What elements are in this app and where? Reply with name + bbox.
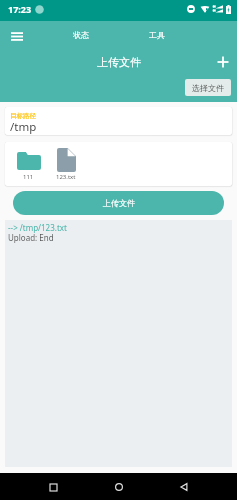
button[interactable]: 状态 xyxy=(43,21,119,48)
button[interactable]: 123.txt xyxy=(47,147,85,181)
staticText: 状态 xyxy=(73,30,89,40)
button[interactable]: Recents xyxy=(42,476,64,498)
button[interactable]: 111 xyxy=(10,147,47,181)
staticText: 17:23 xyxy=(8,3,32,15)
staticText: /tmp xyxy=(10,119,37,134)
staticText: 123.txt xyxy=(56,173,76,181)
staticText: --> /tmp/123.txt xyxy=(8,222,67,233)
button[interactable]: 上传文件 xyxy=(13,191,224,215)
staticText: 上传文件 xyxy=(97,55,141,69)
button[interactable]: 工具 xyxy=(119,21,195,48)
button[interactable]: Menu xyxy=(0,21,33,48)
staticText: 工具 xyxy=(149,30,165,40)
staticText: 目标路径 xyxy=(10,112,36,120)
button[interactable]: Home xyxy=(108,476,130,498)
button[interactable]: 目标路径 xyxy=(5,107,232,135)
button[interactable]: Add xyxy=(209,48,237,76)
button[interactable]: Back xyxy=(173,476,195,498)
button[interactable]: 选择文件 xyxy=(185,79,231,96)
staticText: 选择文件 xyxy=(192,83,224,93)
staticText: Upload: End xyxy=(8,232,54,243)
staticText: 上传文件 xyxy=(103,198,135,208)
staticText: 111 xyxy=(23,173,34,181)
